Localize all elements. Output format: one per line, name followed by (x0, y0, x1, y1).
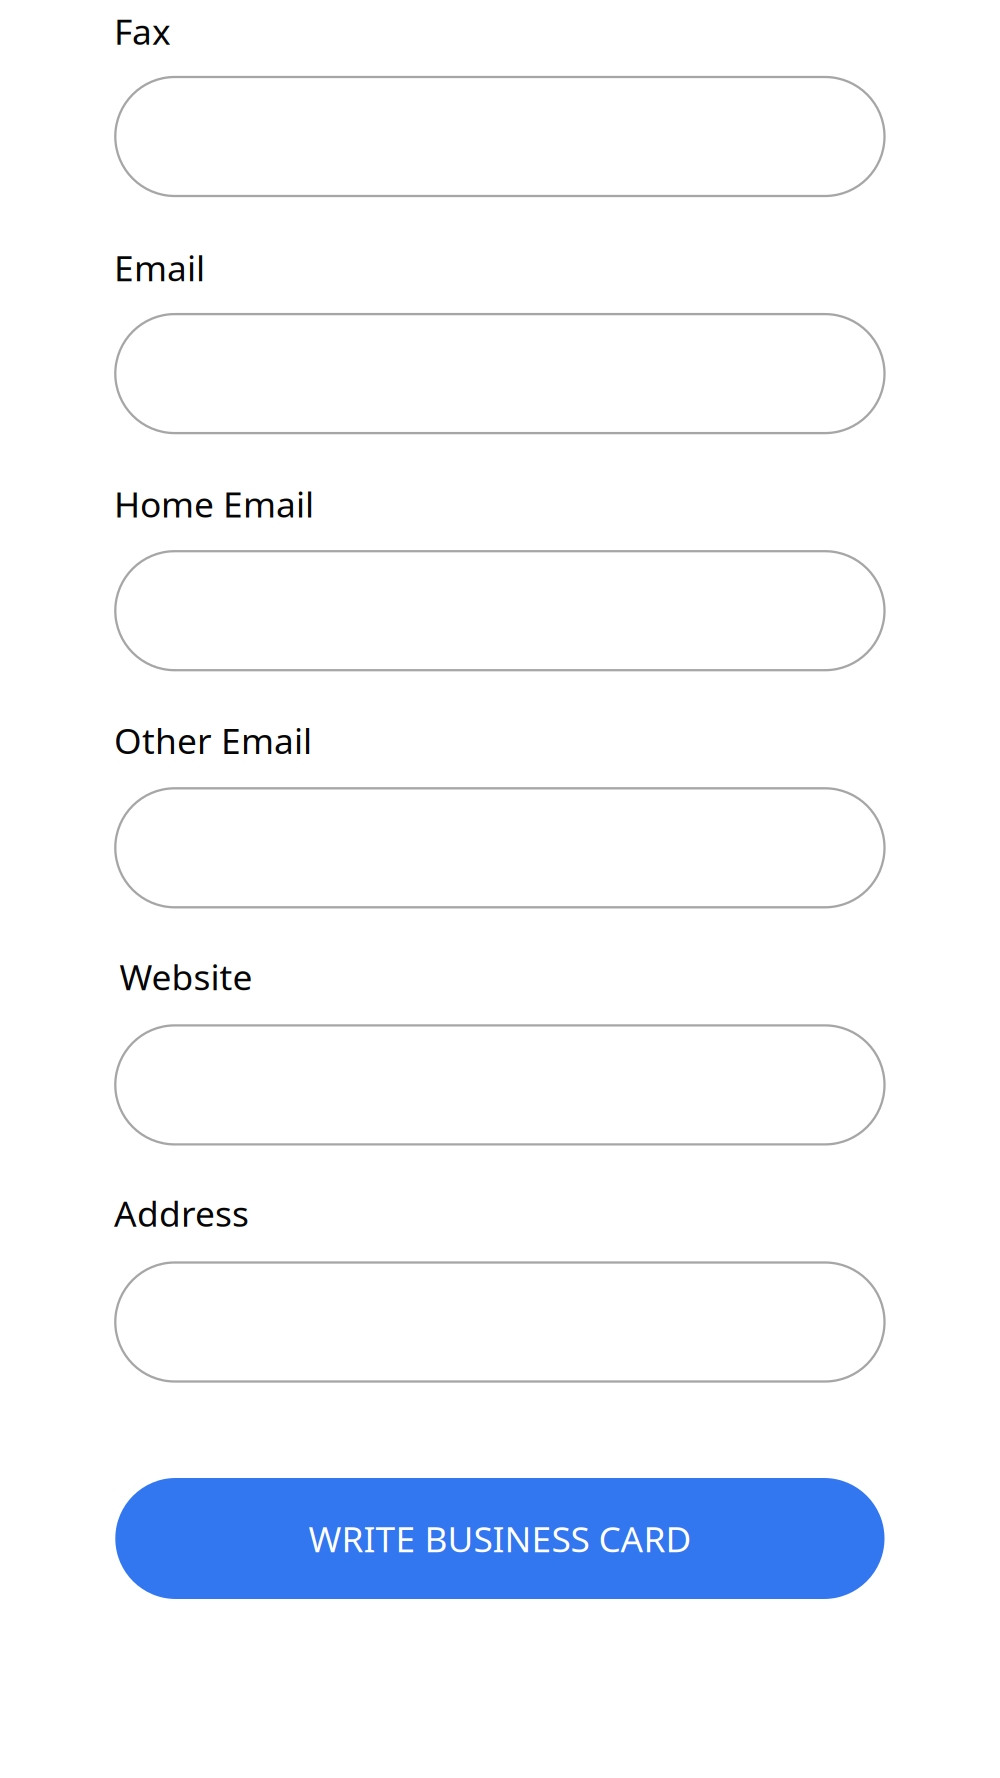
staticText: WRITE BUSINESS CARD (308, 1514, 691, 1562)
staticText: Address (114, 1189, 249, 1237)
button[interactable]: Home Email (115, 551, 884, 670)
button[interactable]: Fax (115, 77, 884, 196)
staticText: Website (119, 953, 252, 1001)
button[interactable]: Address (115, 1262, 884, 1381)
button[interactable]: Website (115, 1025, 884, 1144)
staticText: Home Email (114, 480, 314, 528)
staticText: Other Email (114, 716, 312, 764)
staticText: Email (114, 243, 205, 291)
button[interactable]: Email (115, 314, 884, 433)
staticText: Fax (114, 7, 171, 55)
button[interactable]: Other Email (115, 788, 884, 907)
button[interactable]: WRITE BUSINESS CARD (115, 1478, 884, 1599)
